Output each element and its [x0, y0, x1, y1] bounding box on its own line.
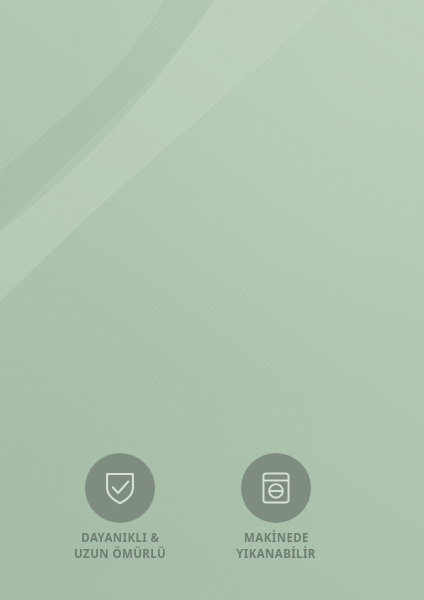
- staticText: YIKANABİLİR: [236, 546, 316, 562]
- button[interactable]: Makinede yıkanabilir: [205, 453, 347, 562]
- staticText: MAKİNEDE: [244, 530, 309, 546]
- staticText: DAYANIKLI &: [81, 530, 160, 546]
- button[interactable]: Dayanıklı ve uzun ömürlü: [49, 453, 191, 562]
- staticText: UZUN ÖMÜRLÜ: [74, 546, 166, 562]
